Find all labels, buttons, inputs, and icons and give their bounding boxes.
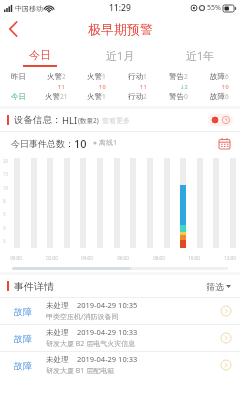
- staticText: 20: [3, 158, 9, 164]
- staticText: ↓2: [180, 83, 188, 90]
- staticText: 设备信息：: [14, 114, 62, 126]
- staticText: ↑1: [139, 83, 147, 90]
- staticText: 今日事件总数：: [11, 138, 74, 149]
- staticText: 火警: [47, 72, 62, 81]
- staticText: 1: [143, 72, 147, 81]
- staticText: 研发大厦 B1 层配电箱: [46, 366, 115, 376]
- staticText: 55%: [207, 3, 221, 13]
- staticText: 近1年: [186, 48, 215, 63]
- staticText: 筛选: [206, 281, 224, 292]
- staticText: 10: [3, 185, 9, 191]
- staticText: 行动: [128, 92, 143, 101]
- staticText: 11:29: [109, 2, 131, 14]
- staticText: 极早期预警: [88, 21, 153, 37]
- staticText: ↑0: [98, 83, 106, 90]
- button[interactable]: Calendar: [215, 134, 233, 152]
- staticText: 2: [143, 92, 147, 101]
- staticText: 06:00: [117, 255, 129, 261]
- staticText: 行动: [128, 72, 143, 81]
- staticText: 3: [3, 225, 6, 231]
- staticText: 警告: [169, 72, 184, 81]
- button[interactable]: 故障: [0, 352, 240, 378]
- staticText: 研发大厦 B2 层电气火灾信息: [46, 339, 136, 349]
- staticText: (数量2): [78, 116, 99, 125]
- staticText: 10:00: [188, 255, 200, 261]
- staticText: 事件详情: [14, 280, 54, 293]
- staticText: ↑1: [57, 83, 65, 90]
- staticText: 2019-04-29 10:33: [77, 354, 138, 364]
- staticText: 火警: [87, 92, 102, 101]
- button[interactable]: Back: [0, 16, 26, 42]
- staticText: 中国移动: [15, 4, 43, 13]
- staticText: 21: [60, 92, 68, 101]
- button[interactable]: 筛选: [202, 278, 235, 295]
- staticText: 查看更多: [102, 116, 130, 125]
- button[interactable]: Details: [216, 301, 236, 321]
- staticText: 未处理: [46, 301, 69, 310]
- staticText: 0: [184, 92, 188, 101]
- button[interactable]: Details: [216, 328, 236, 348]
- staticText: 08:00: [153, 255, 165, 261]
- staticText: 故障: [14, 333, 32, 344]
- button[interactable]: 今日: [0, 42, 80, 68]
- staticText: 甲类空压机/消防设备间: [46, 312, 119, 322]
- staticText: 02:00: [46, 255, 58, 261]
- staticText: 火警: [45, 92, 60, 101]
- staticText: 2019-04-29 10:35: [77, 300, 138, 310]
- staticText: 今日: [11, 92, 26, 101]
- staticText: HLI: [62, 114, 78, 127]
- staticText: 1: [102, 92, 106, 101]
- staticText: 故障: [210, 72, 225, 81]
- button[interactable]: 故障: [0, 298, 240, 324]
- staticText: 6: [225, 92, 229, 101]
- button[interactable]: Details: [216, 355, 236, 375]
- staticText: 昨日: [11, 72, 26, 81]
- button[interactable]: 设备信息：: [0, 109, 240, 131]
- staticText: 8: [3, 198, 6, 204]
- button[interactable]: 故障: [0, 325, 240, 351]
- staticText: 15: [3, 171, 9, 177]
- staticText: 2: [184, 72, 188, 81]
- staticText: 今日: [29, 48, 51, 62]
- staticText: 5: [3, 211, 6, 217]
- staticText: 10: [74, 136, 87, 151]
- staticText: 故障: [14, 306, 32, 317]
- button[interactable]: 近1年: [160, 42, 240, 68]
- staticText: 故障: [14, 360, 32, 371]
- button[interactable]: 近1月: [80, 42, 160, 68]
- staticText: 00:00: [10, 255, 22, 261]
- staticText: 火警: [87, 72, 102, 81]
- staticText: 警告: [169, 92, 184, 101]
- staticText: 离线1: [99, 138, 118, 148]
- staticText: 近1月: [106, 48, 135, 63]
- staticText: ↑0: [221, 83, 229, 90]
- staticText: 未处理: [46, 355, 69, 364]
- staticText: 12:00: [224, 255, 236, 261]
- staticText: 2: [62, 72, 66, 81]
- staticText: 2019-04-29 10:33: [77, 327, 138, 337]
- staticText: 6: [225, 72, 229, 81]
- staticText: 未处理: [46, 328, 69, 337]
- staticText: 1: [102, 72, 106, 81]
- staticText: 04:00: [81, 255, 93, 261]
- button[interactable]: Device status: [211, 116, 230, 124]
- staticText: 故障: [210, 92, 225, 101]
- staticText: 0: [3, 238, 6, 244]
